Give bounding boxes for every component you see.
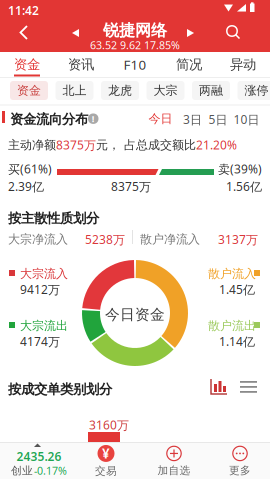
- staticText: 创业: [11, 464, 33, 477]
- button[interactable]: 大宗: [146, 81, 184, 100]
- staticText: 龙虎: [108, 83, 132, 98]
- staticText: 1.45亿: [219, 281, 255, 297]
- staticText: 散户净流入: [140, 232, 200, 247]
- staticText: 主动净额: [8, 138, 56, 152]
- button[interactable]: Back: [19, 25, 29, 40]
- staticText: -0.17%: [34, 463, 67, 478]
- staticText: 8375万: [111, 178, 151, 194]
- button[interactable]: Next stock: [187, 29, 195, 37]
- staticText: 散户流入: [208, 266, 256, 281]
- staticText: 1.56亿: [226, 178, 262, 194]
- button[interactable]: 北上: [55, 81, 93, 100]
- staticText: 大宗: [153, 83, 177, 98]
- staticText: 锐捷网络: [103, 20, 167, 40]
- staticText: 买(61%): [8, 161, 52, 177]
- staticText: 按成交单类别划分: [8, 381, 112, 397]
- button[interactable]: Search: [226, 25, 241, 40]
- staticText: 北上: [62, 83, 86, 98]
- staticText: 大宗净流入: [8, 232, 68, 247]
- button[interactable]: 异动: [216, 52, 270, 77]
- button[interactable]: F10: [108, 52, 162, 77]
- staticText: ¥: [102, 445, 110, 462]
- staticText: 10日: [233, 111, 259, 127]
- button[interactable]: 资讯: [54, 52, 108, 77]
- staticText: 简况: [176, 56, 202, 73]
- button[interactable]: 两融: [192, 81, 230, 100]
- staticText: 资金: [14, 56, 40, 73]
- button[interactable]: 2435.26: [0, 442, 78, 479]
- staticText: 3160万: [89, 417, 129, 433]
- staticText: 两融: [199, 83, 223, 98]
- staticText: 3137万: [218, 231, 258, 247]
- staticText: 11:42: [8, 2, 39, 18]
- button[interactable]: 龙虎: [101, 81, 139, 100]
- staticText: 涨停: [244, 83, 268, 98]
- staticText: 今日资金: [105, 305, 165, 323]
- staticText: 更多: [229, 464, 251, 477]
- staticText: 5238万: [85, 231, 125, 247]
- button[interactable]: 5日: [208, 111, 227, 127]
- staticText: 3日: [183, 111, 202, 127]
- staticText: F10: [123, 56, 146, 73]
- button[interactable]: ¥: [88, 444, 124, 478]
- staticText: 今日: [148, 111, 172, 126]
- staticText: 5日: [208, 111, 227, 127]
- staticText: 卖(39%): [218, 161, 262, 177]
- button[interactable]: Previous stock: [72, 29, 80, 37]
- staticText: 2.39亿: [8, 178, 44, 194]
- staticText: 异动: [230, 56, 256, 73]
- staticText: 63.52 9.62 17.85%: [90, 38, 180, 52]
- button[interactable]: 资金: [0, 52, 54, 77]
- staticText: 资讯: [68, 56, 94, 73]
- staticText: 加自选: [157, 464, 190, 477]
- staticText: 21.20%: [196, 137, 237, 153]
- staticText: 交易: [95, 464, 117, 477]
- button[interactable]: About fund flow: [88, 112, 98, 125]
- staticText: 资金流向分布: [10, 111, 88, 127]
- staticText: 散户流出: [208, 318, 256, 333]
- button[interactable]: List view: [240, 381, 257, 393]
- button[interactable]: 3日: [183, 111, 202, 127]
- button[interactable]: 加自选: [156, 444, 192, 478]
- staticText: 8375万: [56, 137, 96, 153]
- staticText: 9412万: [20, 281, 60, 297]
- button[interactable]: 简况: [162, 52, 216, 77]
- staticText: 元， 占总成交额比: [96, 138, 196, 152]
- staticText: 大宗流入: [20, 266, 68, 281]
- staticText: 2435.26: [16, 448, 61, 464]
- button[interactable]: Bar chart view: [210, 379, 228, 395]
- button[interactable]: 10日: [233, 111, 259, 127]
- button[interactable]: 资金: [10, 81, 48, 100]
- staticText: 资金: [17, 83, 41, 98]
- staticText: 大宗流出: [20, 318, 68, 333]
- staticText: 按主散性质划分: [8, 210, 99, 226]
- button[interactable]: 今日: [148, 111, 172, 126]
- button[interactable]: 涨停: [237, 81, 270, 100]
- button[interactable]: 更多: [222, 444, 258, 478]
- staticText: !: [92, 112, 95, 125]
- staticText: 1.14亿: [219, 333, 255, 349]
- staticText: 4174万: [20, 333, 60, 349]
